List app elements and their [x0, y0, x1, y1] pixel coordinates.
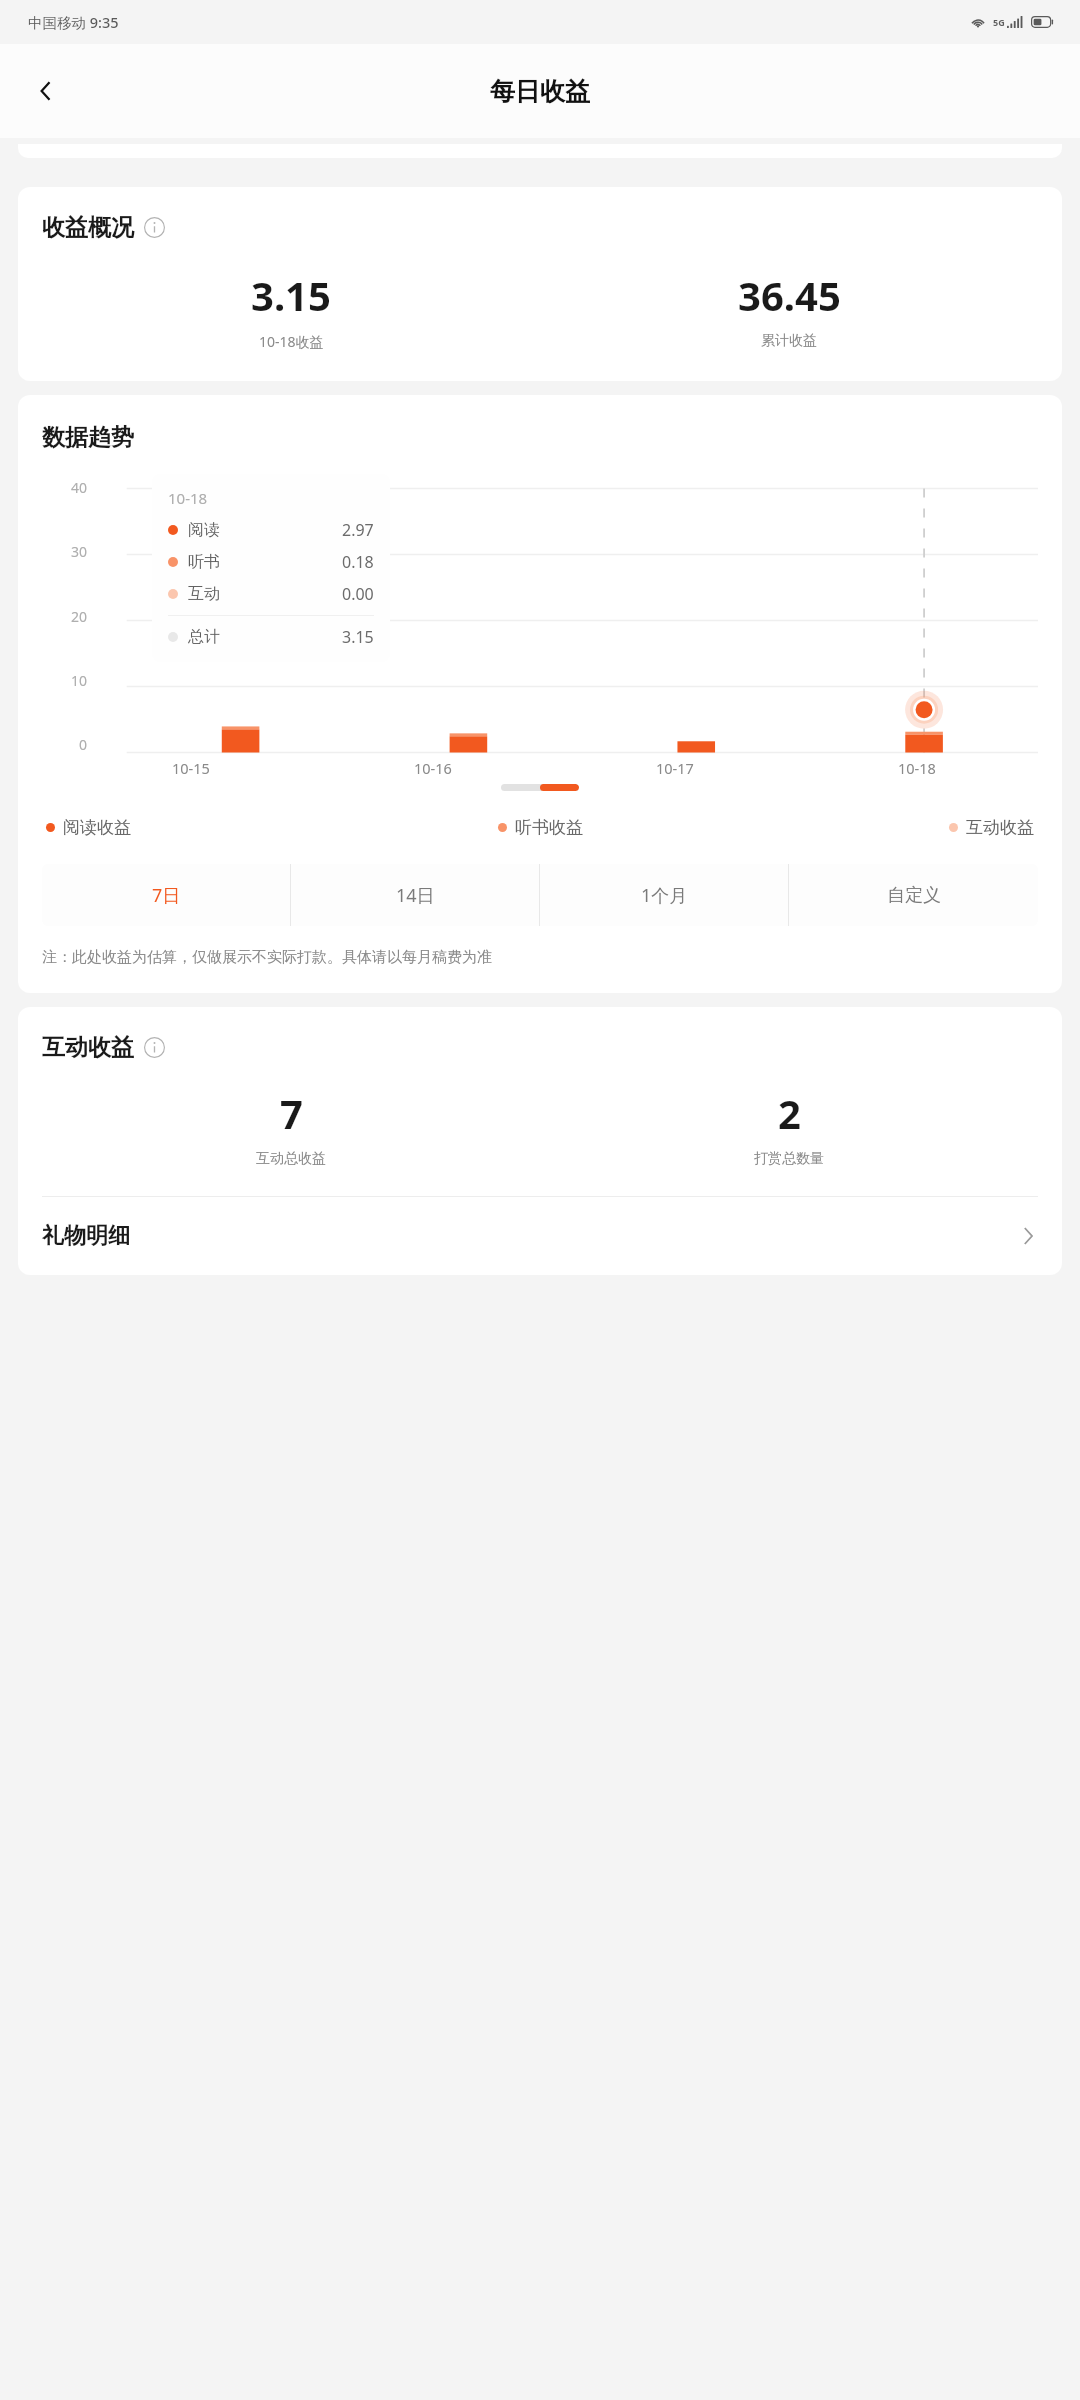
button[interactable]: 礼物明细 — [18, 1197, 1062, 1275]
staticText: 3.15 — [342, 626, 374, 648]
staticText: 累计收益 — [761, 332, 817, 350]
staticText: 每日收益 — [490, 76, 590, 107]
staticText: 收益概况 — [42, 213, 134, 242]
staticText: 互动 — [188, 584, 220, 604]
staticText: 5G — [993, 16, 1005, 28]
staticText: 10-17 — [656, 758, 694, 778]
button[interactable]: 14日 — [291, 864, 540, 926]
staticText: 听书 — [188, 552, 220, 572]
staticText: 打赏总数量 — [754, 1150, 824, 1168]
button[interactable]: 7日 — [42, 864, 291, 926]
staticText: 听书收益 — [515, 817, 583, 838]
staticText: 7 — [280, 1086, 303, 1140]
staticText: 10-18 — [898, 758, 936, 778]
button[interactable]: Back — [20, 65, 72, 117]
button[interactable]: 1个月 — [540, 864, 789, 926]
staticText: 互动收益 — [42, 1033, 134, 1062]
staticText: 2 — [778, 1086, 801, 1140]
staticText: 3.15 — [251, 268, 331, 322]
staticText: 20 — [71, 607, 88, 625]
staticText: 注：此处收益为估算，仅做展示不实际打款。具体请以每月稿费为准 — [42, 948, 492, 967]
staticText: 互动总收益 — [256, 1150, 326, 1168]
staticText: 14日 — [396, 883, 435, 908]
staticText: 总计 — [188, 627, 220, 647]
staticText: 阅读收益 — [63, 817, 131, 838]
staticText: 10-15 — [172, 758, 210, 778]
staticText: 0 — [79, 735, 88, 753]
staticText: 10-18 — [168, 488, 208, 508]
staticText: 10-18收益 — [259, 332, 324, 351]
staticText: 中国移动 9:35 — [28, 12, 119, 32]
staticText: 36.45 — [738, 268, 841, 322]
staticText: 礼物明细 — [42, 1222, 130, 1250]
staticText: 自定义 — [887, 884, 941, 907]
button[interactable]: 收益概况 — [18, 187, 1062, 381]
button[interactable]: Info — [144, 1037, 165, 1058]
staticText: 阅读 — [188, 520, 220, 540]
staticText: 40 — [71, 478, 88, 496]
staticText: 0.18 — [342, 551, 374, 573]
staticText: 1个月 — [641, 883, 688, 908]
staticText: 10 — [71, 671, 88, 689]
staticText: 7日 — [152, 883, 181, 908]
staticText: 2.97 — [342, 519, 374, 541]
staticText: 10-16 — [414, 758, 452, 778]
staticText: 数据趋势 — [42, 423, 134, 452]
staticText: 0.00 — [342, 583, 374, 605]
button[interactable]: 自定义 — [789, 864, 1038, 926]
staticText: 互动收益 — [966, 817, 1034, 838]
staticText: 30 — [71, 542, 88, 560]
button[interactable]: Info — [144, 217, 165, 238]
